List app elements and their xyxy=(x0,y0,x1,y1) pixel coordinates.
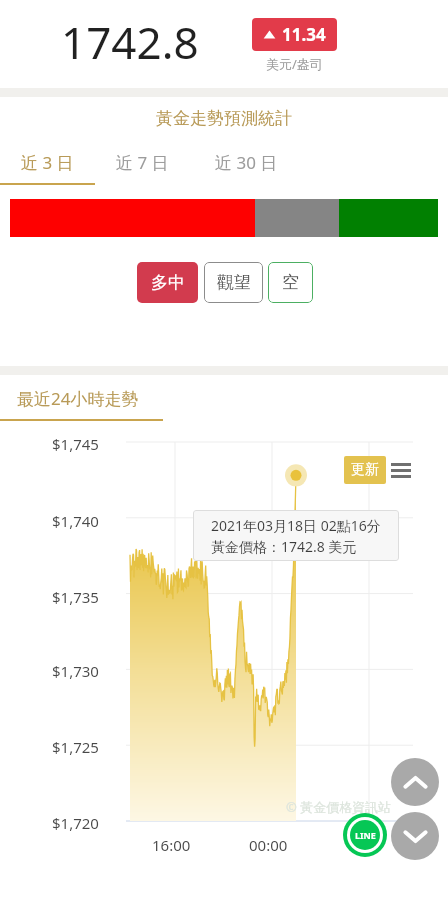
staticText: 空 xyxy=(282,272,299,293)
button[interactable]: Share to LINE xyxy=(343,813,387,857)
button[interactable]: 更新 xyxy=(344,456,386,484)
staticText: 黃金價格：1742.8 美元 xyxy=(211,537,357,556)
staticText: 11.34 xyxy=(282,23,326,46)
staticText: 黃金走勢預測統計 xyxy=(156,108,292,129)
button[interactable]: 近 7 日 xyxy=(95,139,190,185)
button[interactable]: 觀望 xyxy=(204,262,263,303)
button[interactable]: 11.34 xyxy=(252,18,337,51)
staticText: 近 7 日 xyxy=(116,151,169,174)
staticText: 2021年03月18日 02點16分 xyxy=(211,516,381,535)
button[interactable]: 多中 xyxy=(137,262,198,303)
staticText: 近 30 日 xyxy=(215,151,278,174)
staticText: 觀望 xyxy=(217,272,251,293)
button[interactable]: Scroll to bottom xyxy=(391,812,439,860)
staticText: 更新 xyxy=(351,461,379,479)
button[interactable]: 近 3 日 xyxy=(0,139,95,185)
staticText: 16:00 xyxy=(152,835,191,855)
staticText: $1,720 xyxy=(52,813,99,833)
staticText: LINE xyxy=(355,829,376,841)
staticText: 近 3 日 xyxy=(21,151,74,174)
staticText: 00:00 xyxy=(249,835,288,855)
staticText: $1,745 xyxy=(52,434,99,454)
button[interactable]: 空 xyxy=(268,262,313,303)
staticText: $1,735 xyxy=(52,587,99,607)
staticText: $1,740 xyxy=(52,511,99,531)
staticText: 美元/盎司 xyxy=(266,55,323,73)
button[interactable]: Menu xyxy=(389,458,413,482)
staticText: 最近24小時走勢 xyxy=(17,387,139,410)
staticText: 多中 xyxy=(151,272,185,293)
staticText: $1,730 xyxy=(52,661,99,681)
staticText: © 黃金價格資訊站 xyxy=(286,798,392,816)
button[interactable]: 近 30 日 xyxy=(190,139,302,185)
staticText: 1742.8 xyxy=(61,12,199,72)
button[interactable]: Scroll to top xyxy=(391,758,439,806)
staticText: $1,725 xyxy=(52,737,99,757)
